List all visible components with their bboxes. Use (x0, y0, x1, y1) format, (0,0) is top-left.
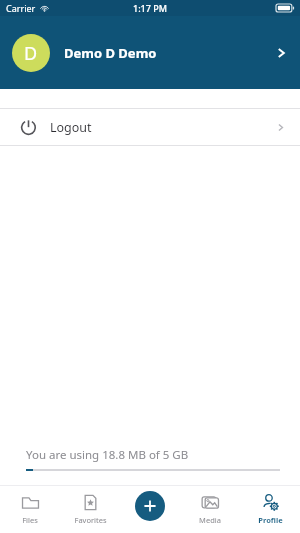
button[interactable]: D (0, 16, 300, 89)
staticText: Carrier (6, 2, 36, 14)
staticText: D (24, 41, 38, 66)
button[interactable]: Add (135, 491, 165, 521)
button[interactable]: Favorites (60, 485, 120, 533)
staticText: Media (199, 515, 221, 525)
button[interactable]: Media (180, 485, 240, 533)
staticText: Profile (258, 515, 283, 525)
staticText: Files (22, 515, 38, 525)
staticText: Demo D Demo (64, 44, 157, 62)
staticText: 1:17 PM (133, 2, 167, 14)
button[interactable]: Logout (0, 109, 300, 145)
button[interactable]: Files (0, 485, 60, 533)
button[interactable]: Profile (240, 485, 300, 533)
staticText: You are using 18.8 MB of 5 GB (26, 447, 189, 463)
staticText: Logout (50, 119, 92, 136)
staticText: Favorites (74, 515, 107, 525)
